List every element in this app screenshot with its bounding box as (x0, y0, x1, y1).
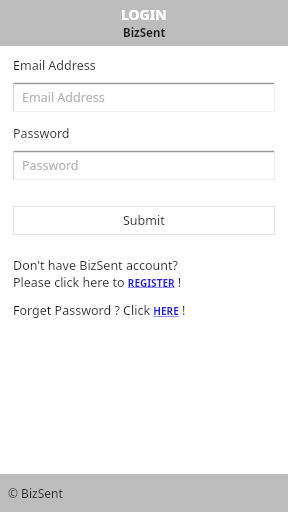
staticText: Email Address (22, 89, 105, 106)
staticText: BizSent (123, 25, 166, 41)
staticText: Don't have BizSent account? Please click… (13, 257, 182, 290)
staticText: LOGIN (121, 5, 167, 24)
staticText: Password (22, 157, 79, 174)
staticText: Forget Password ? Click HERE ! (13, 302, 186, 319)
button[interactable]: Password (13, 151, 275, 180)
button[interactable]: Submit (13, 206, 275, 235)
staticText: Password (13, 125, 70, 142)
button[interactable]: Email Address (13, 83, 275, 112)
button[interactable]: Don't have BizSent account? Please click… (13, 257, 182, 290)
button[interactable]: Forget Password ? Click HERE ! (13, 302, 186, 319)
staticText: Submit (123, 212, 165, 229)
staticText: © BizSent (8, 485, 63, 501)
staticText: Email Address (13, 57, 96, 74)
